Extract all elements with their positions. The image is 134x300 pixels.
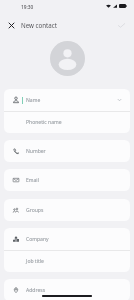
staticText: Number (26, 148, 46, 155)
button[interactable]: Add photo (50, 41, 85, 76)
staticText: Address (26, 287, 46, 294)
button[interactable]: Company (4, 228, 130, 250)
button[interactable]: Phonetic name (4, 111, 130, 133)
button[interactable]: Address (4, 279, 130, 300)
button[interactable]: Email (4, 169, 130, 191)
staticText: New contact (21, 21, 57, 29)
button[interactable]: Close (3, 17, 19, 33)
staticText: 19:30 (21, 4, 34, 11)
staticText: Groups (26, 207, 44, 214)
button[interactable]: Job title (4, 250, 130, 272)
staticText: Company (26, 236, 49, 243)
button[interactable]: Name (4, 89, 130, 111)
staticText: Email (26, 177, 39, 184)
button[interactable]: Number (4, 140, 130, 162)
staticText: Name (26, 97, 41, 104)
staticText: Phonetic name (26, 119, 62, 126)
staticText: Job title (26, 258, 44, 265)
button[interactable]: Groups (4, 199, 130, 221)
